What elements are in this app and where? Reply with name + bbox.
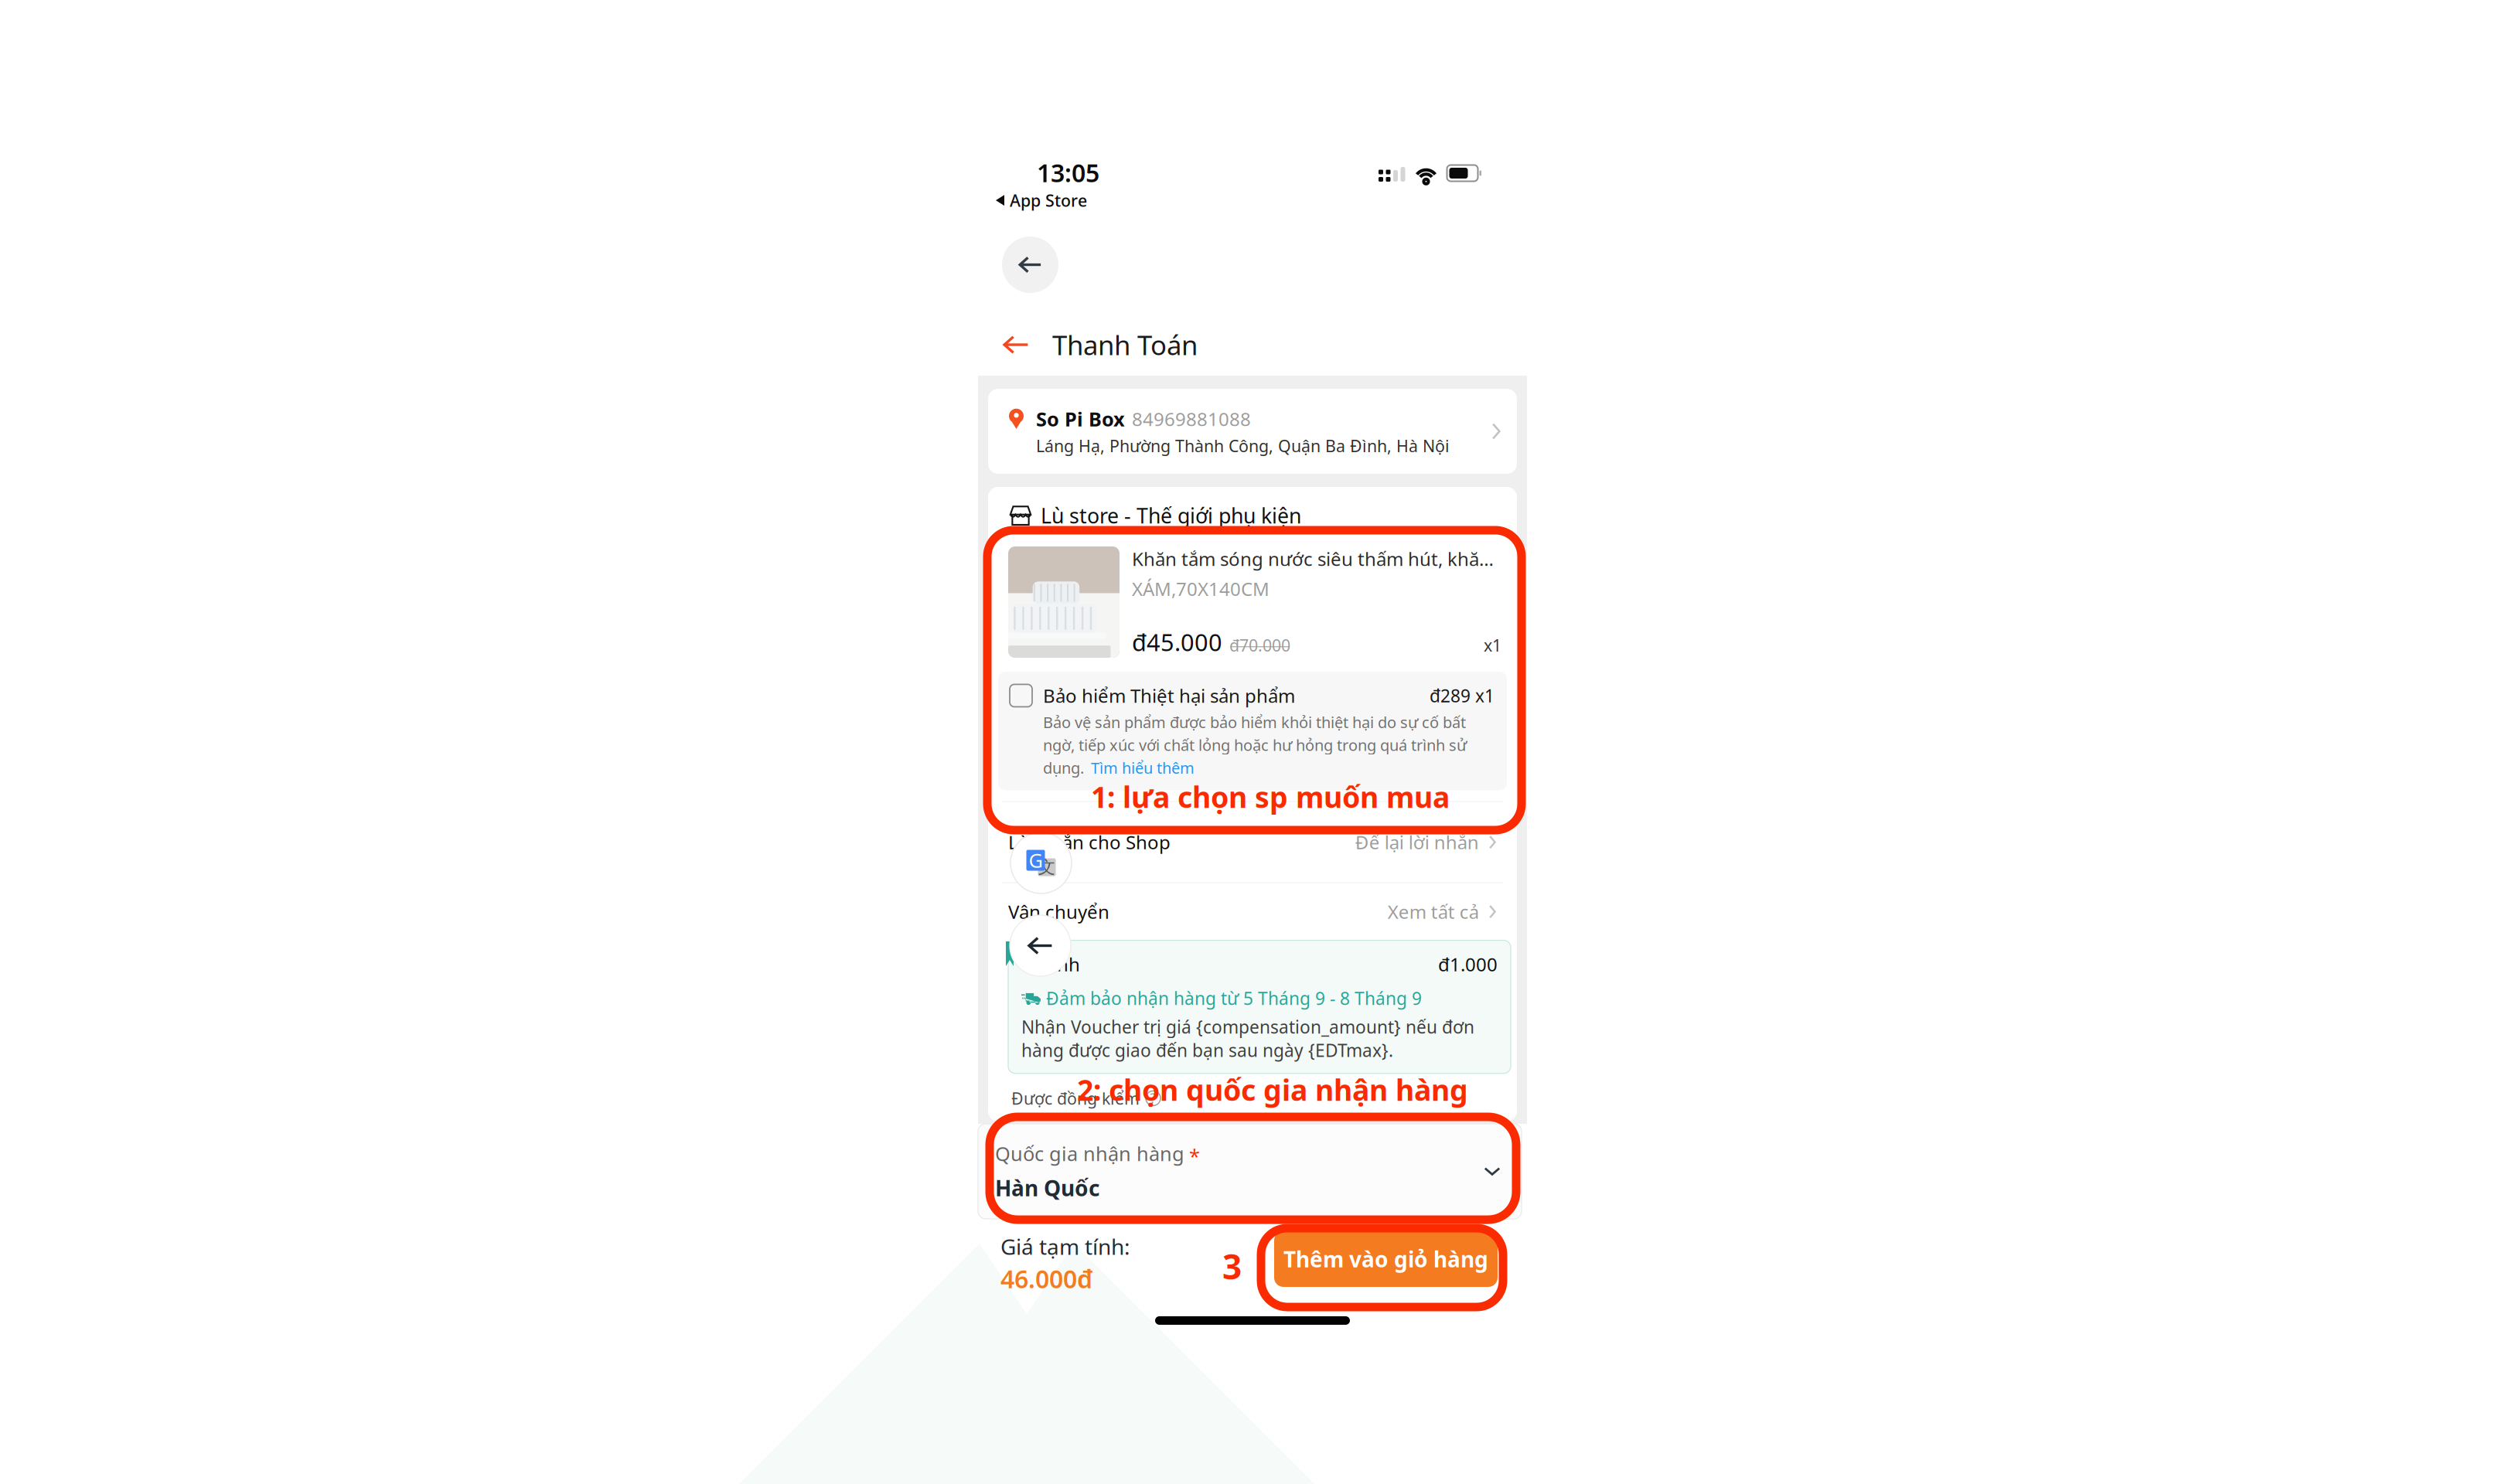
staticText: 文 xyxy=(1038,856,1056,878)
staticText: x1 xyxy=(1484,634,1501,656)
staticText: Thanh Toán xyxy=(1052,327,1198,362)
button[interactable]: Vận chuyển xyxy=(988,883,1517,940)
staticText: ? xyxy=(1150,1089,1156,1107)
staticText: Khăn tắm sóng nước siêu thấm hút, khăn m… xyxy=(1132,546,1501,571)
staticText: 2: chọn quốc gia nhận hàng xyxy=(1077,1070,1468,1109)
staticText: * xyxy=(1189,1143,1200,1169)
staticText: Được đồng kiểm xyxy=(1011,1087,1140,1109)
staticText: 46.000đ xyxy=(1000,1262,1092,1295)
staticText: Nhanh xyxy=(1021,952,1080,977)
staticText: Hàn Quốc xyxy=(995,1173,1099,1202)
staticText: Để lại lời nhắn xyxy=(1355,830,1479,854)
staticText: 84969881088 xyxy=(1132,406,1251,431)
button[interactable]: Tìm hiểu thêm xyxy=(1091,757,1195,778)
staticText: Lù store - Thế giới phụ kiện xyxy=(1041,502,1301,529)
button[interactable]: Chọn bảo hiểm thiệt hại sản phẩm xyxy=(1010,684,1032,707)
staticText: đ45.000 xyxy=(1132,626,1222,658)
staticText: Bảo vệ sản phẩm được bảo hiểm khỏi thiệt… xyxy=(1043,712,1466,732)
staticText: Giá tạm tính: xyxy=(1000,1232,1130,1261)
staticText: Xem tất cả xyxy=(1388,899,1479,924)
button[interactable]: Thêm vào giỏ hàng xyxy=(1274,1231,1498,1287)
staticText: So Pi Box xyxy=(1036,406,1125,432)
staticText: dụng. xyxy=(1043,757,1084,778)
button[interactable]: Back xyxy=(1010,915,1071,976)
staticText: Bảo hiểm Thiệt hại sản phẩm xyxy=(1043,683,1295,708)
staticText: G xyxy=(1029,847,1043,873)
staticText: Tìm hiểu thêm xyxy=(1091,757,1195,778)
button[interactable]: Back xyxy=(1002,237,1058,293)
staticText: XÁM,70X140CM xyxy=(1132,577,1270,601)
staticText: đ70.000 xyxy=(1229,634,1290,656)
staticText: Thêm vào giỏ hàng xyxy=(1283,1245,1488,1273)
staticText: 13:05 xyxy=(1037,156,1099,189)
staticText: Đảm bảo nhận hàng từ 5 Tháng 9 - 8 Tháng… xyxy=(1046,987,1422,1010)
staticText: 3 xyxy=(1222,1244,1242,1289)
staticText: đ289 x1 xyxy=(1430,684,1494,707)
staticText: đ1.000 xyxy=(1438,952,1498,977)
staticText: Quốc gia nhận hàng xyxy=(995,1141,1184,1166)
button[interactable]: So Pi Box xyxy=(988,389,1517,474)
staticText: Vận chuyển xyxy=(1008,899,1109,924)
staticText: Láng Hạ, Phường Thành Công, Quận Ba Đình… xyxy=(1036,435,1450,457)
button[interactable]: Back xyxy=(1003,324,1052,366)
staticText: 1: lựa chọn sp muốn mua xyxy=(1091,778,1450,816)
staticText: App Store xyxy=(1010,189,1087,211)
button[interactable]: Quốc gia nhận hàng xyxy=(978,1124,1522,1219)
staticText: Lời nhắn cho Shop xyxy=(1008,830,1171,854)
staticText: Nhận Voucher trị giá {compensation_amoun… xyxy=(1021,1015,1474,1062)
button[interactable]: Lời nhắn cho Shop xyxy=(988,802,1517,882)
staticText: ngờ, tiếp xúc với chất lỏng hoặc hư hỏng… xyxy=(1043,735,1467,755)
